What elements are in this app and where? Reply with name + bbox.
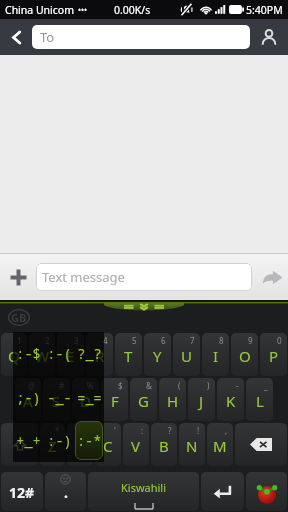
- button[interactable]: A: [15, 378, 41, 421]
- staticText: 8: [219, 335, 224, 346]
- button[interactable]: B: [151, 423, 177, 466]
- button[interactable]: R: [86, 333, 113, 376]
- staticText: $: [118, 380, 123, 391]
- staticText: I: [213, 346, 219, 366]
- staticText: .: [64, 483, 68, 502]
- staticText: =_=: [77, 389, 102, 407]
- staticText: •••: [78, 4, 88, 15]
- staticText: G: [138, 391, 149, 411]
- staticText: H: [167, 391, 179, 411]
- staticText: 0: [277, 335, 282, 346]
- button[interactable]: :-): [44, 419, 74, 462]
- staticText: :-*: [77, 432, 102, 450]
- staticText: Y: [153, 346, 162, 366]
- button[interactable]: :-(: [44, 332, 74, 376]
- button[interactable]: S: [43, 378, 70, 421]
- button[interactable]: Send: [260, 265, 284, 289]
- button[interactable]: To: [32, 25, 250, 49]
- staticText: X: [76, 436, 85, 456]
- button[interactable]: V: [123, 423, 149, 466]
- button[interactable]: L: [246, 378, 273, 421]
- button[interactable]: Kiswahili: [88, 472, 199, 511]
- button[interactable]: Back: [0, 19, 32, 55]
- staticText: C: [103, 436, 113, 456]
- staticText: &: [146, 380, 152, 391]
- button[interactable]: :-*: [75, 421, 103, 460]
- staticText: J: [199, 391, 204, 411]
- button[interactable]: C: [95, 423, 121, 466]
- button[interactable]: Attach: [4, 263, 32, 291]
- staticText: :-(: [47, 345, 72, 363]
- button[interactable]: [201, 472, 244, 511]
- staticText: Z: [48, 436, 57, 456]
- staticText: -: [236, 380, 239, 391]
- button[interactable]: Q: [1, 333, 27, 376]
- staticText: M: [213, 436, 227, 456]
- staticText: China Unicom: [5, 3, 75, 17]
- button[interactable]: [235, 423, 287, 466]
- button[interactable]: ;-): [13, 376, 44, 419]
- button[interactable]: M: [207, 423, 233, 466]
- staticText: %: [87, 380, 94, 391]
- button[interactable]: Contacts: [250, 19, 288, 55]
- button[interactable]: =_=: [74, 376, 104, 419]
- button[interactable]: 12#: [1, 472, 43, 511]
- button[interactable]: H: [159, 378, 186, 421]
- staticText: W: [35, 346, 49, 366]
- staticText: +_+: [16, 432, 41, 450]
- button[interactable]: Y: [144, 333, 171, 376]
- staticText: Q: [8, 346, 20, 366]
- staticText: 1: [17, 335, 22, 346]
- button[interactable]: F: [101, 378, 128, 421]
- staticText: N: [186, 436, 198, 456]
- button[interactable]: I: [202, 333, 229, 376]
- staticText: 3: [74, 335, 79, 346]
- staticText: :: [141, 425, 144, 436]
- staticText: GB: [11, 310, 27, 325]
- staticText: 12#: [9, 483, 35, 502]
- button[interactable]: U: [173, 333, 200, 376]
- staticText: #: [59, 380, 65, 391]
- staticText: ,: [225, 425, 228, 436]
- button[interactable]: P: [260, 333, 287, 376]
- staticText: 2: [45, 335, 50, 346]
- staticText: 7: [190, 335, 195, 346]
- staticText: 4: [103, 335, 108, 346]
- staticText: ?_?: [77, 345, 102, 363]
- staticText: S: [52, 391, 61, 411]
- button[interactable]: ?_?: [74, 332, 104, 376]
- button[interactable]: D: [72, 378, 99, 421]
- button[interactable]: W: [29, 333, 55, 376]
- button[interactable]: O: [231, 333, 258, 376]
- staticText: 6: [161, 335, 166, 346]
- staticText: @: [28, 380, 36, 391]
- staticText: F: [111, 391, 119, 411]
- staticText: B: [159, 436, 169, 456]
- staticText: A: [23, 391, 33, 411]
- button[interactable]: Text message: [36, 263, 252, 291]
- staticText: ): [207, 380, 210, 391]
- button[interactable]: N: [179, 423, 205, 466]
- button[interactable]: G: [130, 378, 157, 421]
- button[interactable]: :-$: [13, 332, 44, 376]
- staticText: O: [239, 346, 251, 366]
- staticText: !: [197, 425, 200, 436]
- button[interactable]: E: [57, 333, 84, 376]
- staticText: L: [256, 391, 264, 411]
- button[interactable]: [1, 423, 38, 466]
- staticText: ': [114, 425, 116, 436]
- button[interactable]: Z: [40, 423, 65, 466]
- staticText: K: [226, 391, 236, 411]
- button[interactable]: -_-: [44, 376, 74, 419]
- staticText: *: [55, 425, 60, 436]
- button[interactable]: K: [217, 378, 244, 421]
- button[interactable]: J: [188, 378, 215, 421]
- staticText: _: [264, 380, 268, 391]
- staticText: Kiswahili: [121, 480, 167, 495]
- button[interactable]: .: [45, 472, 86, 511]
- button[interactable]: [246, 472, 287, 511]
- button[interactable]: T: [115, 333, 142, 376]
- button[interactable]: +_+: [13, 419, 44, 462]
- button[interactable]: X: [67, 423, 93, 466]
